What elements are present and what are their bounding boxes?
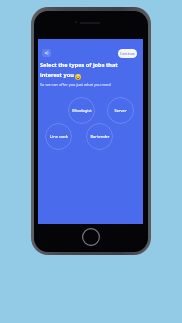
staticText: Mixologist xyxy=(72,108,92,113)
staticText: Line cook xyxy=(50,134,68,139)
button[interactable]: Continue xyxy=(118,49,137,58)
button[interactable]: Back xyxy=(42,49,51,57)
button[interactable]: Mixologist xyxy=(68,97,95,124)
button[interactable]: Bartender xyxy=(86,123,113,150)
staticText: Continue xyxy=(120,51,135,56)
button[interactable]: Server xyxy=(107,97,134,124)
staticText: Bartender xyxy=(90,134,110,139)
staticText: Select the types of jobs that interest y… xyxy=(40,61,118,79)
staticText: So we can offer you just what you need xyxy=(40,82,111,87)
button[interactable]: Line cook xyxy=(45,123,72,150)
staticText: Server xyxy=(114,108,127,113)
